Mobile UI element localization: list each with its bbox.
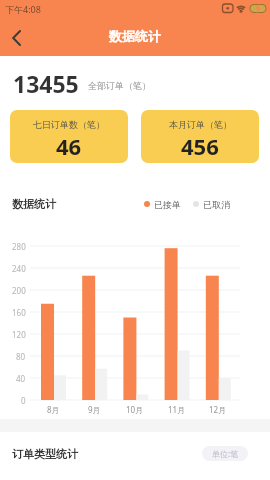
staticText: 9月 [88,404,101,415]
staticText: 七日订单数（笔） [33,119,105,130]
staticText: 12月 [209,404,227,415]
staticText: 46 [56,131,82,161]
staticText: 13455 [13,68,79,99]
staticText: 240 [12,263,26,274]
staticText: 已取消 [203,199,230,210]
staticText: 订单类型统计 [12,447,78,461]
staticText: 已接单 [154,199,181,210]
staticText: 456 [181,131,219,161]
staticText: 本月订单（笔） [169,119,232,130]
staticText: 数据统计 [109,28,161,44]
staticText: 数据统计 [12,197,56,211]
staticText: 280 [12,241,26,252]
staticText: 8月 [47,404,60,415]
staticText: 40 [16,373,26,384]
staticText: 120 [12,329,26,340]
staticText: 80 [16,351,26,362]
button[interactable] [4,23,34,53]
staticText: 10月 [126,404,144,415]
button[interactable]: 单位:笔 [202,446,248,461]
button[interactable]: 本月订单（笔） [141,110,259,163]
staticText: 0 [21,395,26,406]
staticText: 160 [12,307,26,318]
button[interactable]: 七日订单数（笔） [10,110,128,163]
staticText: 200 [12,285,26,296]
staticText: 全部订单（笔） [88,80,151,91]
staticText: 11月 [168,404,186,415]
staticText: 下午4:08 [5,3,41,15]
staticText: 单位:笔 [212,448,239,459]
